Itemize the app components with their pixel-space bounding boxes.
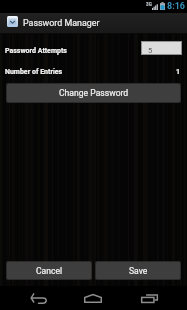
button[interactable]: Home bbox=[72, 286, 114, 310]
staticText: Password Attempts bbox=[5, 47, 67, 55]
staticText: Cancel bbox=[36, 266, 63, 276]
button[interactable]: Change Password bbox=[7, 84, 180, 102]
button[interactable]: Back bbox=[18, 286, 60, 310]
staticText: Save bbox=[129, 266, 148, 276]
button[interactable]: 5 bbox=[142, 42, 181, 54]
staticText: 1 bbox=[150, 68, 180, 76]
staticText: Password Manager bbox=[23, 18, 100, 28]
staticText: 3G bbox=[146, 2, 152, 7]
staticText: Number of Entries bbox=[5, 68, 63, 76]
button[interactable]: Recent apps bbox=[128, 286, 170, 310]
button[interactable]: Cancel bbox=[7, 262, 91, 279]
staticText: Change Password bbox=[59, 88, 129, 98]
staticText: 8:16 bbox=[167, 1, 186, 12]
button[interactable]: Save bbox=[96, 262, 180, 279]
staticText: 5 bbox=[148, 46, 153, 55]
